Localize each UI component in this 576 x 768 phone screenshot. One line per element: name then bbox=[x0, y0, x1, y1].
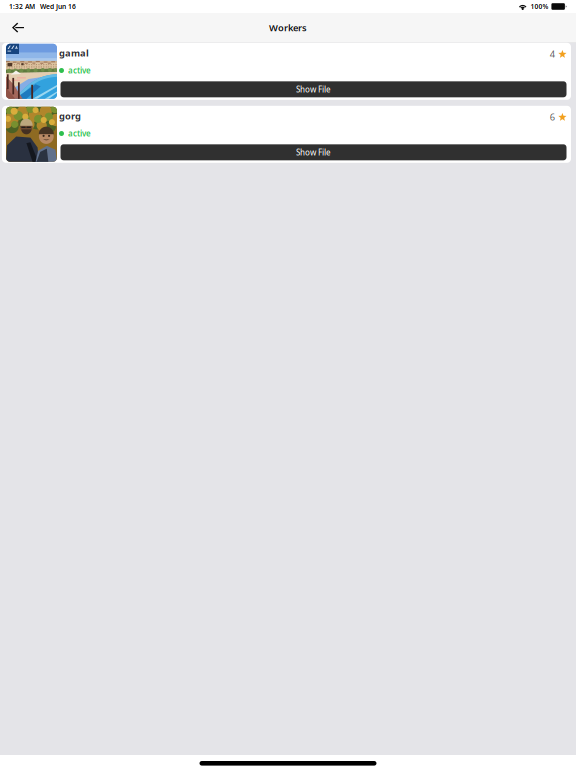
staticText: active bbox=[68, 65, 91, 76]
button[interactable]: Back bbox=[0, 15, 34, 40]
button[interactable]: Show File bbox=[60, 144, 566, 160]
staticText: 4 bbox=[550, 48, 555, 60]
staticText: Show File bbox=[296, 84, 331, 95]
button[interactable]: Show File bbox=[60, 81, 566, 97]
staticText: gamal bbox=[59, 47, 89, 59]
staticText: Show File bbox=[296, 147, 331, 158]
staticText: gorg bbox=[59, 110, 81, 122]
staticText: 6 bbox=[550, 111, 555, 123]
staticText: Workers bbox=[269, 21, 307, 34]
staticText: 1:32 AM bbox=[9, 2, 35, 11]
staticText: active bbox=[68, 128, 91, 139]
staticText: Wed Jun 16 bbox=[40, 2, 76, 11]
staticText: 100% bbox=[530, 2, 548, 11]
